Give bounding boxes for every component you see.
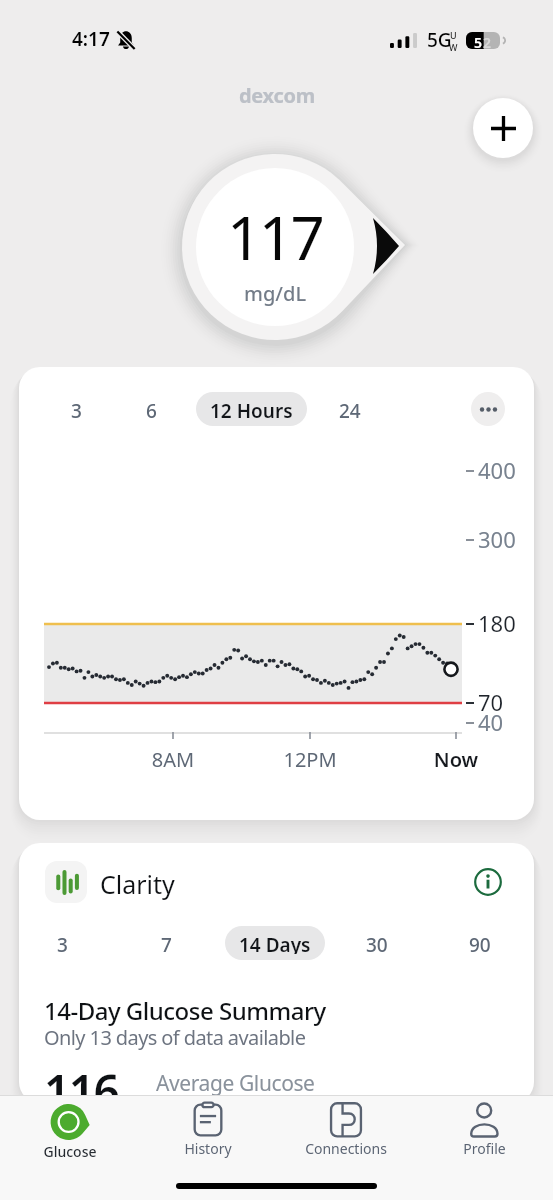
button[interactable]: Connections [277,1096,415,1158]
button[interactable]: 30 [354,926,400,960]
staticText: Only 13 days of data available [44,1024,306,1051]
staticText: 5 [474,33,483,52]
staticText: 12 Hours [210,398,293,420]
staticText: 300 [478,524,516,554]
staticText: mg/dL [244,280,307,307]
staticText: 400 [478,455,516,485]
staticText: 12PM [270,746,350,773]
button[interactable]: 90 [457,926,503,960]
button[interactable]: 24 [327,392,373,426]
staticText: dexcom [239,82,315,109]
staticText: 2 [483,33,492,52]
button[interactable]: Profile [415,1096,553,1158]
staticText: 117 [227,196,323,278]
button[interactable]: 3 [59,392,94,426]
staticText: Connections [305,1139,387,1158]
staticText: 14 Days [239,932,311,954]
staticText: 6 [146,398,157,420]
button[interactable]: 6 [134,392,169,426]
staticText: 24 [339,398,361,420]
staticText: 70 [478,687,504,717]
button[interactable]: Current glucose 117 mg/dL [165,140,430,365]
button[interactable]: Information [471,865,505,899]
staticText: Average Glucose [156,1069,315,1098]
staticText: 4:17 [72,26,110,52]
staticText: 40 [478,707,504,737]
button[interactable]: More options [471,392,505,426]
button[interactable]: History [139,1096,277,1158]
staticText: 30 [366,932,388,954]
button[interactable]: 3 [45,926,80,960]
staticText: Profile [463,1139,506,1158]
button[interactable]: 14 Days [225,926,325,960]
staticText: 14-Day Glucose Summary [44,994,326,1027]
button[interactable]: Glucose [0,1096,139,1161]
button[interactable]: 7 [149,926,184,960]
staticText: Clarity [100,867,175,901]
staticText: 5G [427,27,452,53]
staticText: 8AM [133,746,213,773]
staticText: 180 [478,608,516,638]
button[interactable]: 12 Hours [196,392,307,426]
staticText: 3 [71,398,82,420]
button[interactable]: Add event [473,98,533,158]
staticText: 90 [469,932,491,954]
staticText: 3 [57,932,68,954]
staticText: Now [416,746,496,773]
staticText: W [449,41,458,53]
staticText: 116 [44,1060,119,1103]
button[interactable]: Clarity [45,861,87,903]
staticText: History [184,1139,232,1158]
staticText: 7 [161,932,172,954]
staticText: Glucose [43,1142,97,1161]
staticText: U [450,29,457,41]
